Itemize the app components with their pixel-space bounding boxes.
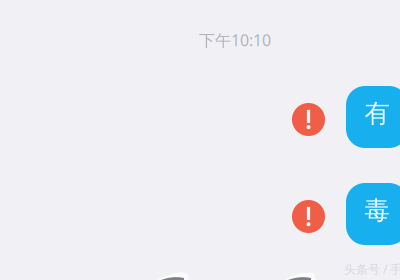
button[interactable]: 有 <box>346 86 400 148</box>
button[interactable]: 毒 <box>346 183 400 245</box>
staticText: 头条号 / 手机 <box>344 261 400 277</box>
staticText: 毒 <box>364 195 389 226</box>
staticText: 有 <box>364 98 389 129</box>
staticText: 下午10:10 <box>199 29 271 51</box>
button[interactable]: Resend message <box>292 200 325 233</box>
button[interactable]: Resend message <box>292 103 325 136</box>
